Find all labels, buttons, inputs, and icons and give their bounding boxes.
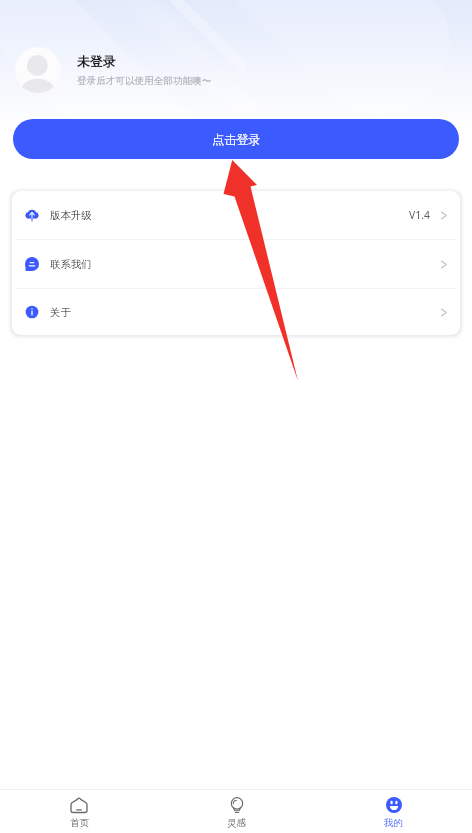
staticText: V1.4: [409, 208, 430, 222]
button[interactable]: 灵感: [158, 792, 315, 833]
button[interactable]: 联系我们: [12, 240, 460, 288]
staticText: 我的: [384, 817, 403, 829]
staticText: 未登录: [77, 54, 116, 70]
staticText: 版本升级: [50, 209, 92, 222]
staticText: 灵感: [227, 817, 246, 829]
button[interactable]: 关于: [12, 289, 460, 335]
staticText: 首页: [70, 817, 89, 829]
staticText: 登录后才可以使用全部功能噢〜: [77, 75, 212, 87]
button[interactable]: 我的: [315, 792, 472, 833]
button[interactable]: 点击登录: [13, 119, 459, 159]
staticText: 关于: [50, 306, 71, 319]
staticText: 点击登录: [212, 132, 261, 147]
button[interactable]: 版本升级: [12, 191, 460, 239]
button[interactable]: 首页: [0, 792, 158, 833]
staticText: 联系我们: [50, 258, 92, 271]
